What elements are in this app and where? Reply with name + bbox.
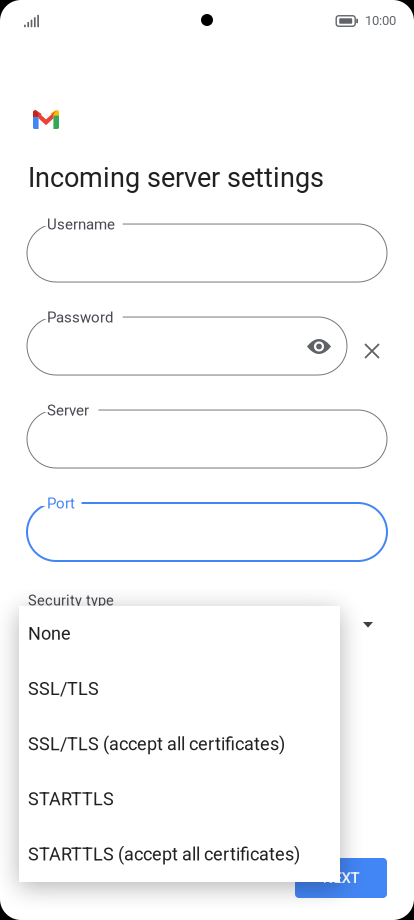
button[interactable]: SSL/TLS <box>19 661 340 716</box>
staticText: Server <box>47 401 89 419</box>
staticText: Security type <box>28 592 114 609</box>
button[interactable]: NEXT <box>295 858 387 898</box>
staticText: Password <box>47 308 113 326</box>
button[interactable]: STARTTLS <box>19 772 340 827</box>
staticText: Incoming server settings <box>28 162 324 194</box>
staticText: 10:00 <box>365 13 396 28</box>
staticText: Port <box>47 494 75 512</box>
button[interactable]: STARTTLS (accept all certificates) <box>19 827 340 882</box>
staticText: STARTTLS (accept all certificates) <box>28 844 300 865</box>
staticText: STARTTLS <box>28 789 114 810</box>
staticText: SSL/TLS <box>28 678 99 699</box>
button[interactable]: SSL/TLS (accept all certificates) <box>19 716 340 772</box>
button[interactable]: None <box>19 606 340 661</box>
staticText: Username <box>47 215 115 233</box>
staticText: SSL/TLS (accept all certificates) <box>28 733 285 755</box>
staticText: NEXT <box>322 869 359 887</box>
button[interactable]: Clear <box>356 335 388 367</box>
staticText: None <box>28 623 71 644</box>
